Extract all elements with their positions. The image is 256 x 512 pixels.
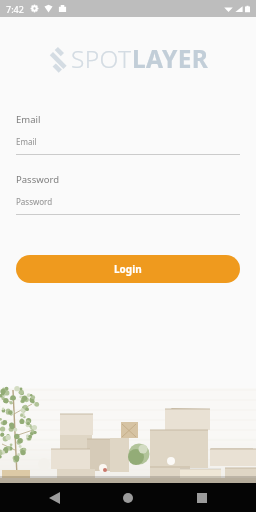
button[interactable]: Back xyxy=(32,483,76,512)
staticText: Password xyxy=(16,173,59,186)
button[interactable]: Login xyxy=(16,255,240,283)
staticText: 7:42 xyxy=(6,3,24,15)
staticText: Login xyxy=(114,262,142,276)
staticText: LAYER xyxy=(132,42,209,75)
staticText: Email xyxy=(16,113,41,126)
button[interactable]: Email xyxy=(16,113,240,126)
staticText: Password xyxy=(16,196,53,207)
staticText: Email xyxy=(16,136,37,147)
button[interactable]: Password xyxy=(16,173,240,186)
button[interactable]: Recent apps xyxy=(180,483,224,512)
staticText: SPOT xyxy=(71,42,132,75)
button[interactable]: Home xyxy=(106,483,150,512)
